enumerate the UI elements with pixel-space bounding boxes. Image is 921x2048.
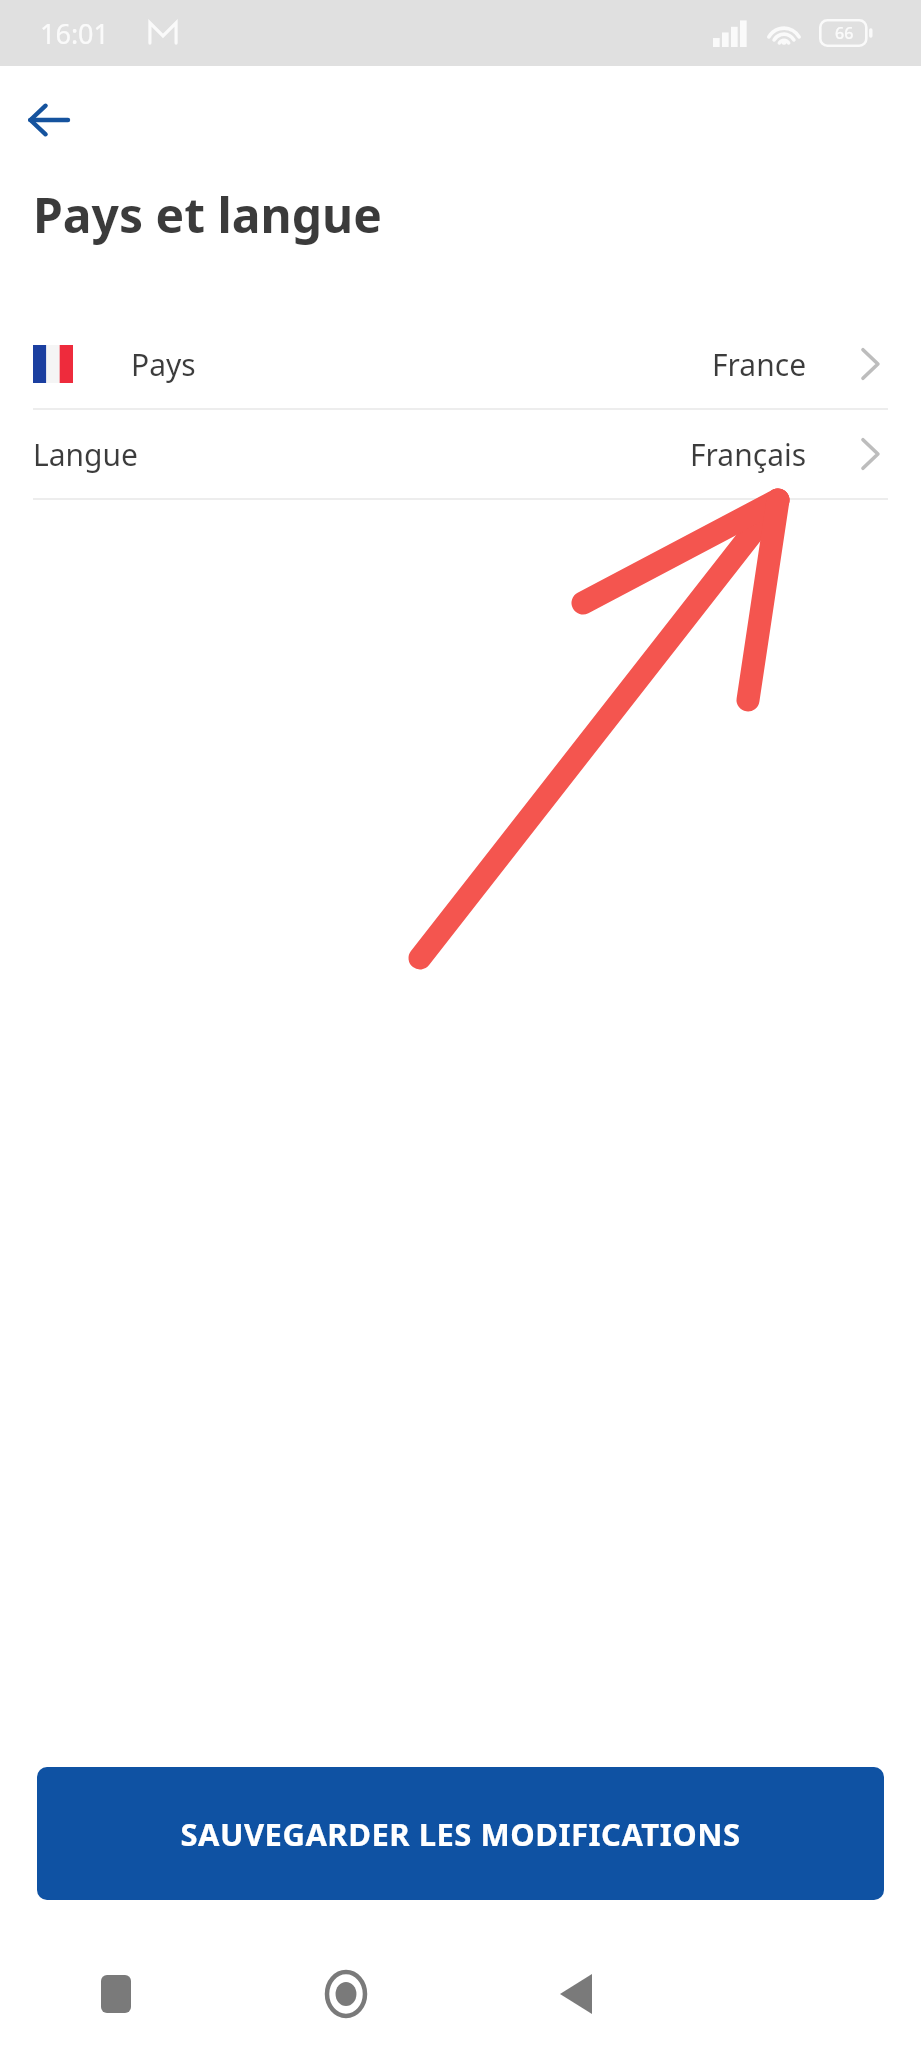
staticText: Pays — [131, 344, 196, 385]
staticText: 66 — [835, 22, 854, 44]
staticText: Langue — [33, 434, 138, 475]
button[interactable]: SAUVEGARDER LES MODIFICATIONS — [37, 1767, 884, 1900]
button[interactable]: Langue — [0, 410, 921, 498]
button[interactable]: Recent apps — [0, 1940, 231, 2048]
staticText: SAUVEGARDER LES MODIFICATIONS — [180, 1813, 741, 1855]
staticText: Français — [690, 434, 807, 475]
button[interactable]: Back — [461, 1940, 691, 2048]
button[interactable]: Back — [14, 86, 82, 154]
staticText: 16:01 — [40, 15, 110, 52]
staticText: France — [712, 344, 807, 385]
button[interactable]: Home — [231, 1940, 461, 2048]
staticText: Pays et langue — [33, 182, 382, 247]
button[interactable]: Pays — [0, 320, 921, 408]
